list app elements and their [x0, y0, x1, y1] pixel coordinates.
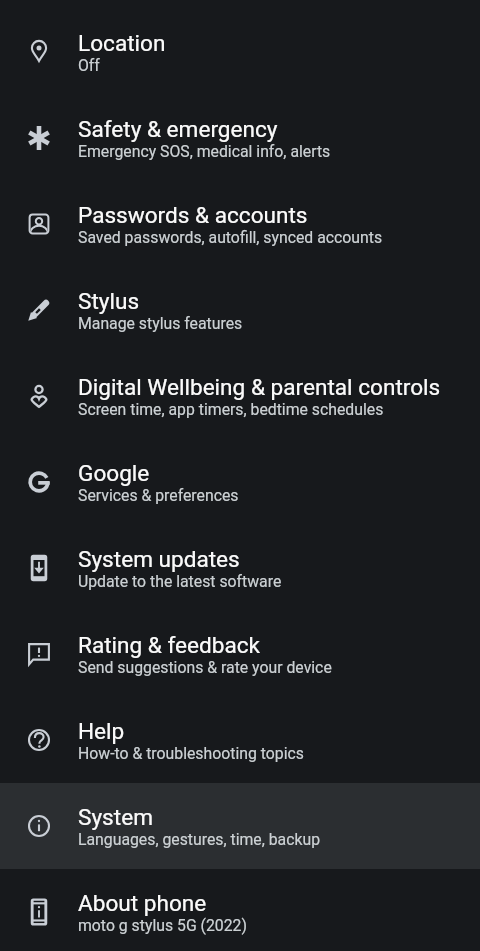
staticText: moto g stylus 5G (2022): [78, 916, 247, 935]
staticText: About phone: [78, 890, 207, 916]
button[interactable]: Digital Wellbeing & parental controls: [0, 353, 480, 439]
button[interactable]: About phone: [0, 869, 480, 951]
staticText: System updates: [78, 546, 240, 572]
staticText: Update to the latest software: [78, 572, 282, 591]
staticText: Saved passwords, autofill, synced accoun…: [78, 228, 383, 247]
button[interactable]: Location: [0, 9, 480, 95]
staticText: Manage stylus features: [78, 314, 243, 333]
button[interactable]: Stylus: [0, 267, 480, 353]
staticText: Stylus: [78, 288, 140, 314]
button[interactable]: Rating & feedback: [0, 611, 480, 697]
staticText: Languages, gestures, time, backup: [78, 830, 321, 849]
staticText: Screen time, app timers, bedtime schedul…: [78, 400, 384, 419]
button[interactable]: System updates: [0, 525, 480, 611]
button[interactable]: Passwords & accounts: [0, 181, 480, 267]
staticText: Location: [78, 30, 166, 56]
staticText: Services & preferences: [78, 486, 239, 505]
staticText: How-to & troubleshooting topics: [78, 744, 304, 763]
staticText: Help: [78, 718, 125, 744]
staticText: Send suggestions & rate your device: [78, 658, 332, 677]
staticText: Google: [78, 460, 150, 486]
staticText: System: [78, 804, 153, 830]
button[interactable]: Google: [0, 439, 480, 525]
staticText: Rating & feedback: [78, 632, 261, 658]
button[interactable]: Help: [0, 697, 480, 783]
staticText: Emergency SOS, medical info, alerts: [78, 142, 331, 161]
button[interactable]: System: [0, 783, 480, 869]
button[interactable]: Safety & emergency: [0, 95, 480, 181]
staticText: Off: [78, 56, 100, 75]
staticText: Safety & emergency: [78, 116, 278, 142]
staticText: Passwords & accounts: [78, 202, 308, 228]
staticText: Digital Wellbeing & parental controls: [78, 374, 441, 400]
